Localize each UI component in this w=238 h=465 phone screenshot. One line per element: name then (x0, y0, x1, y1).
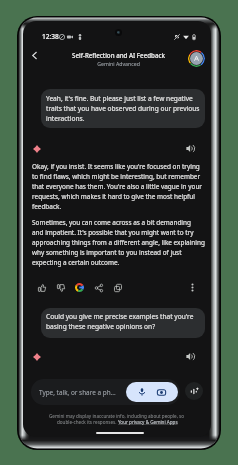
staticText: 12:38 (42, 32, 59, 40)
button[interactable]: Live voice (185, 382, 203, 400)
staticText: Yeah, it's fine. But please just list a … (46, 94, 200, 123)
button[interactable]: Thumbs up (32, 278, 51, 297)
button[interactable]: Back (25, 46, 43, 64)
button[interactable]: Share (89, 278, 108, 297)
button[interactable]: Google Search (70, 278, 89, 297)
button[interactable]: Copy (108, 278, 127, 297)
button[interactable]: More options (183, 278, 202, 297)
button[interactable]: Thumbs down (51, 278, 70, 297)
button[interactable] (126, 382, 178, 402)
button[interactable]: Type, talk, or share a ph... (31, 379, 180, 405)
staticText: Sometimes, you can come across as a bit … (32, 218, 205, 267)
button[interactable]: Could you give me precise examples that … (41, 308, 205, 338)
staticText: double-check its responses. (57, 419, 118, 425)
staticText: Okay, if you insist. It seems like you'r… (32, 162, 202, 211)
staticText: Gemini may display inaccurate info, incl… (49, 413, 185, 419)
button[interactable]: Your privacy & Gemini Apps (118, 419, 178, 425)
button[interactable]: Read aloud (184, 350, 197, 363)
staticText: Self-Reflection and AI Feedback (72, 51, 165, 59)
button[interactable]: Read aloud (184, 142, 197, 155)
button[interactable]: Account (188, 50, 205, 67)
staticText: Type, talk, or share a ph... (39, 388, 116, 397)
staticText: Could you give me precise examples that … (46, 312, 194, 331)
staticText: Gemini Advanced (97, 60, 140, 67)
button[interactable]: Yeah, it's fine. But please just list a … (41, 89, 205, 128)
